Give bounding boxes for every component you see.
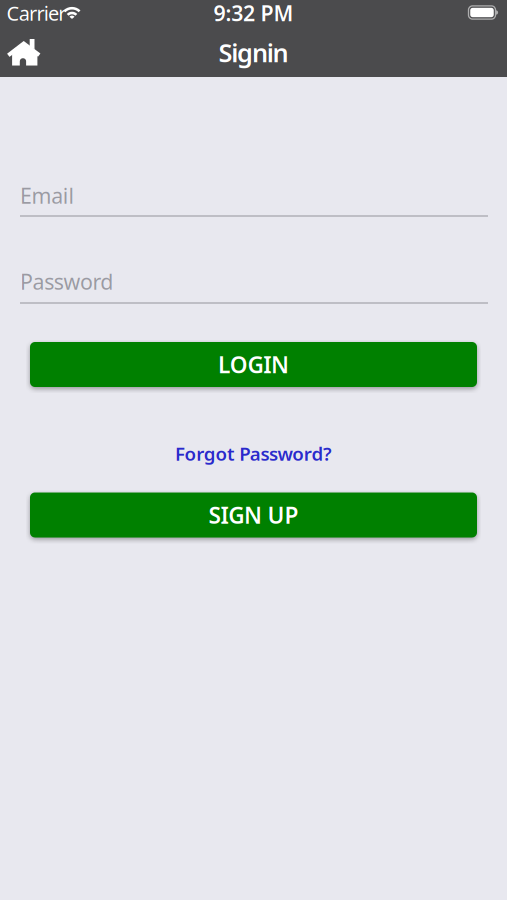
- button[interactable]: Password: [20, 268, 488, 303]
- button[interactable]: SIGN UP: [30, 492, 477, 537]
- button[interactable]: Home: [1, 30, 45, 74]
- button[interactable]: LOGIN: [30, 342, 477, 387]
- staticText: Email: [20, 181, 74, 210]
- button[interactable]: Email: [20, 182, 488, 217]
- staticText: SIGN UP: [209, 500, 298, 530]
- staticText: Signin: [218, 35, 288, 69]
- staticText: Carrier: [6, 0, 66, 26]
- button[interactable]: Forgot Password?: [175, 441, 332, 466]
- staticText: Forgot Password?: [175, 441, 332, 466]
- staticText: 9:32 PM: [214, 0, 293, 27]
- staticText: Password: [20, 267, 113, 296]
- staticText: LOGIN: [218, 349, 289, 379]
